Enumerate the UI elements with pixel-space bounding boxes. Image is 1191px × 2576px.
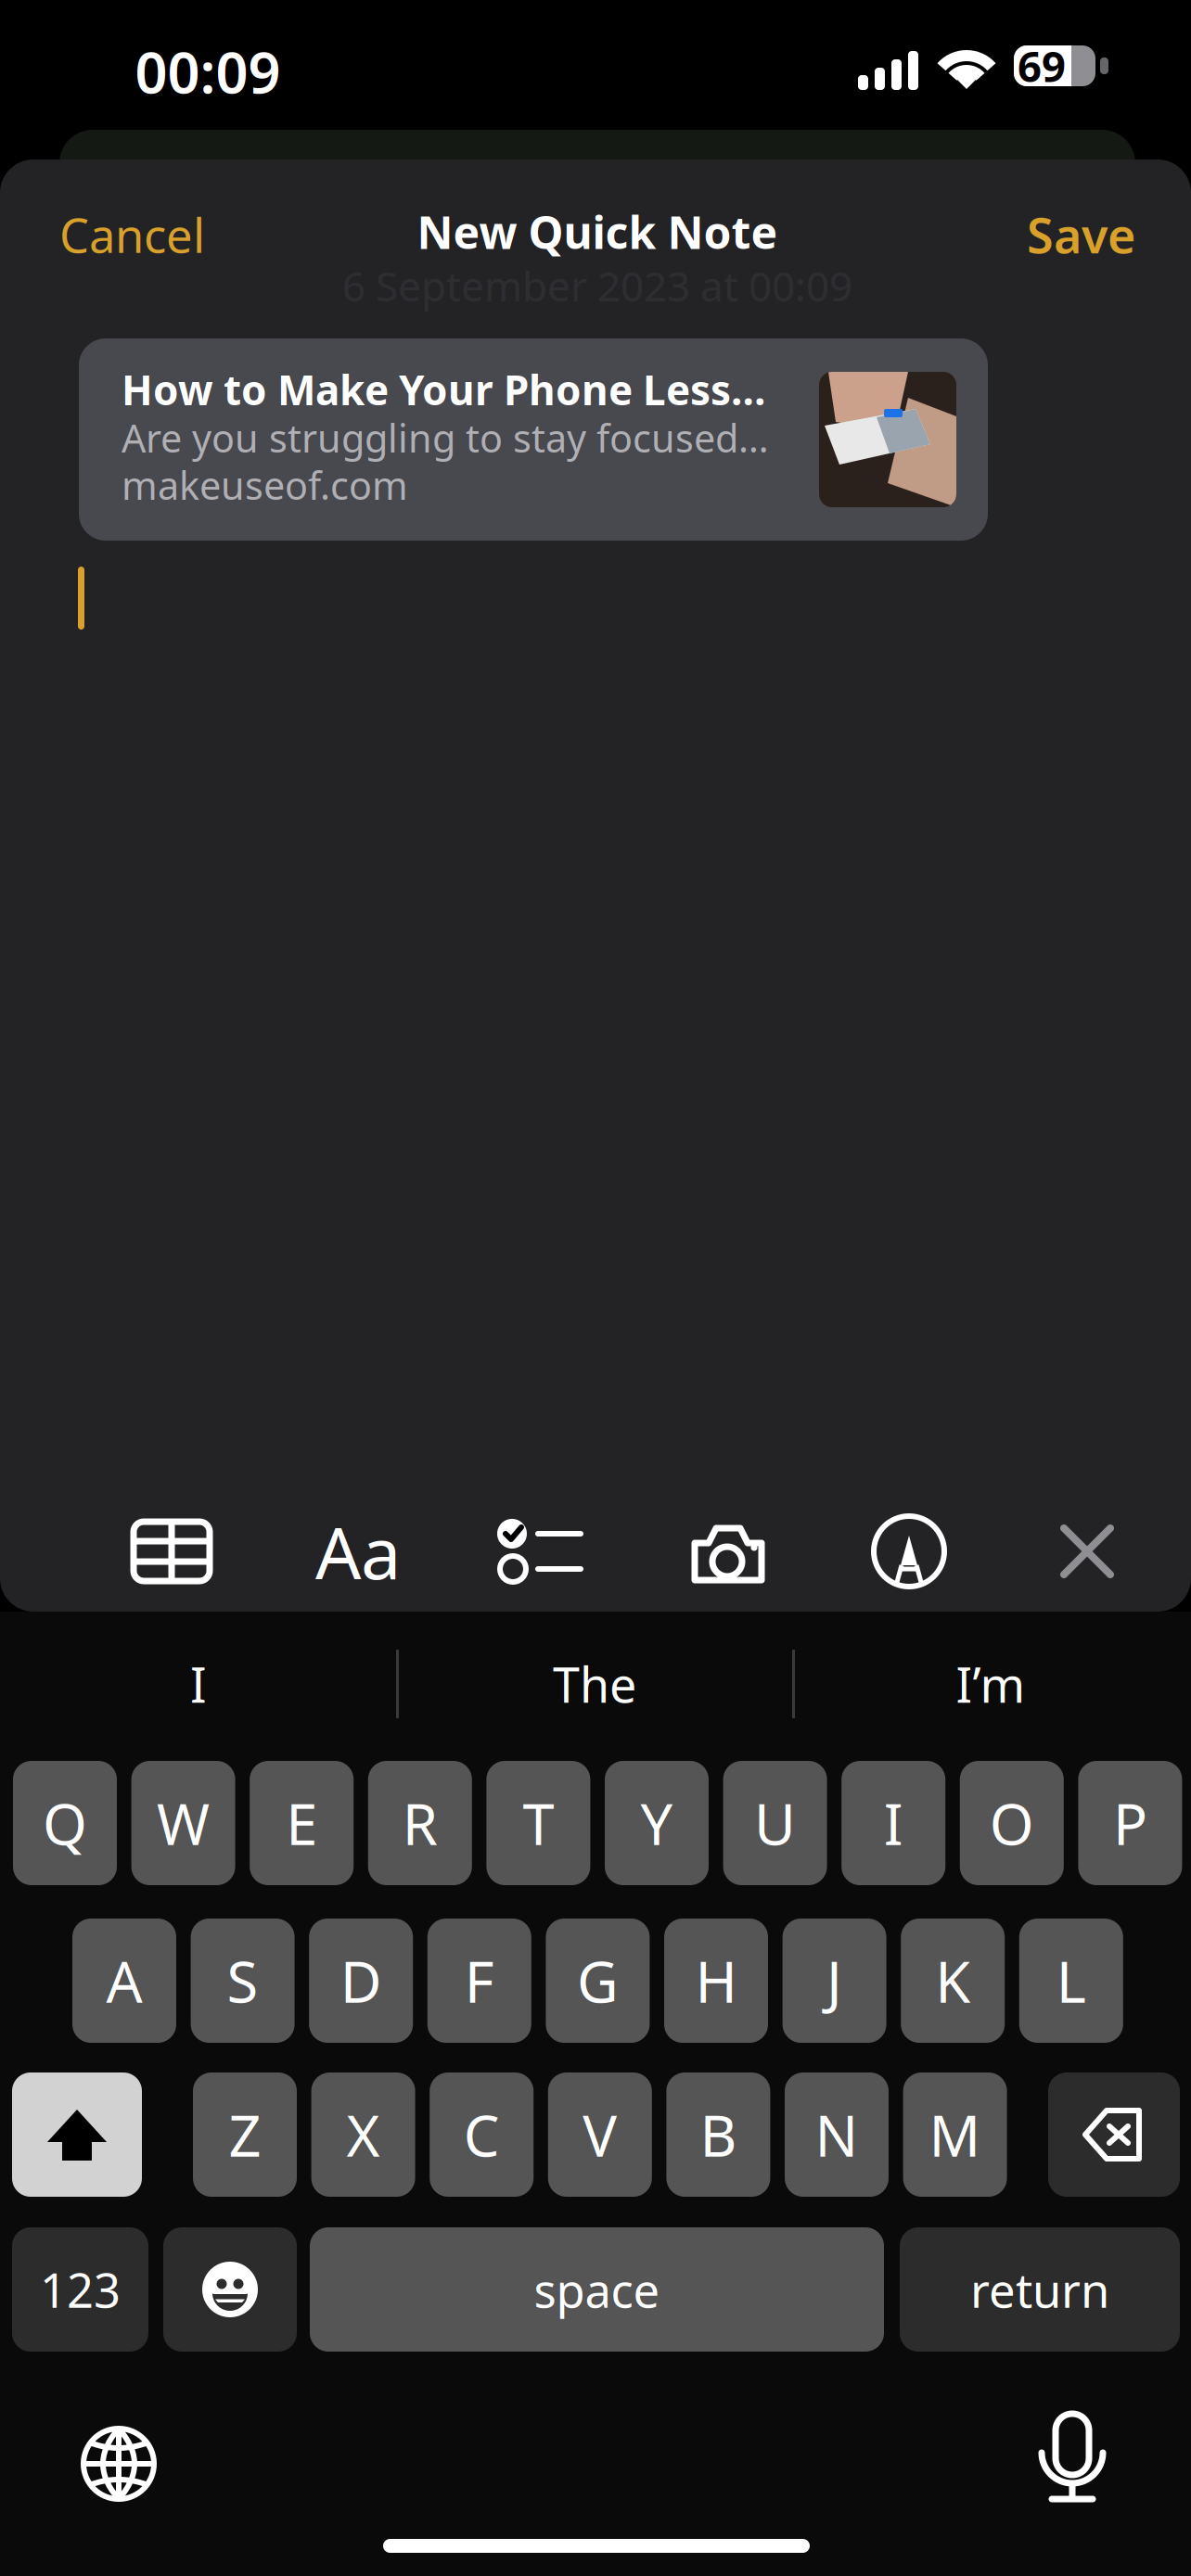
staticText: A [106,1942,142,2019]
staticText: space [534,2257,660,2321]
button[interactable] [163,2227,297,2352]
button[interactable]: H [664,1919,768,2043]
button[interactable]: X [311,2072,415,2197]
staticText: X [347,2096,380,2173]
staticText: K [935,1942,970,2019]
button[interactable]: A [72,1919,176,2043]
staticText: W [157,1784,210,1862]
button[interactable]: space [310,2227,884,2352]
button[interactable]: I’m [796,1633,1185,1735]
button[interactable]: C [430,2072,534,2197]
button[interactable]: L [1019,1919,1123,2043]
staticText: G [577,1942,619,2019]
staticText: V [583,2096,617,2173]
button[interactable]: Dictation [1021,2408,1123,2510]
staticText: Z [229,2096,261,2173]
button[interactable]: T [486,1761,590,1885]
button[interactable]: J [782,1919,886,2043]
staticText: M [929,2096,981,2173]
staticText: return [970,2257,1109,2321]
button[interactable]: M [903,2072,1007,2197]
staticText: Q [43,1784,87,1862]
button[interactable]: R [368,1761,472,1885]
button[interactable]: return [900,2227,1180,2352]
staticText: 69 [1018,37,1066,94]
button[interactable]: Camera [677,1510,779,1593]
staticText: E [286,1784,317,1862]
staticText: How to Make Your Phone Less Di… [122,362,771,417]
staticText: B [700,2096,737,2173]
button[interactable]: Close [1036,1504,1138,1599]
staticText: U [754,1784,796,1862]
button[interactable]: Markup [858,1510,960,1593]
staticText: Are you struggling to stay focused on w… [122,412,771,464]
button[interactable]: Aa [302,1510,414,1593]
button[interactable]: I [4,1633,393,1735]
button[interactable]: Cancel [59,200,223,269]
button[interactable] [1048,2072,1180,2197]
button[interactable]: G [546,1919,650,2043]
button[interactable]: D [309,1919,413,2043]
button[interactable]: V [548,2072,652,2197]
staticText: 00:09 [135,33,281,110]
button[interactable] [12,2072,142,2197]
button[interactable]: Table [121,1510,223,1593]
staticText: Aa [315,1502,401,1600]
button[interactable]: I [841,1761,945,1885]
staticText: Cancel [59,203,205,267]
staticText: makeuseof.com [122,459,408,511]
staticText: C [464,2096,500,2173]
button[interactable]: Z [193,2072,297,2197]
button[interactable]: E [250,1761,354,1885]
button[interactable]: The [400,1633,789,1735]
staticText: New Quick Note [417,201,778,262]
staticText: O [990,1784,1034,1862]
button[interactable]: Q [13,1761,117,1885]
staticText: D [340,1942,382,2019]
staticText: R [402,1784,438,1862]
button[interactable]: How to Make Your Phone Less Di… [79,338,988,541]
button[interactable]: F [427,1919,531,2043]
staticText: 6 September 2023 at 00:09 [342,258,852,313]
button[interactable]: 123 [12,2227,148,2352]
staticText: Save [1027,202,1135,267]
staticText: Y [640,1784,673,1862]
button[interactable]: B [666,2072,770,2197]
staticText: F [465,1942,494,2019]
staticText: J [827,1942,842,2019]
staticText: T [523,1784,554,1862]
button[interactable]: Save [1005,200,1135,269]
staticText: H [695,1942,737,2019]
button[interactable]: N [785,2072,889,2197]
staticText: P [1113,1784,1147,1862]
button[interactable]: O [960,1761,1064,1885]
staticText: I’m [956,1651,1025,1717]
staticText: S [227,1942,258,2019]
button[interactable]: K [901,1919,1005,2043]
staticText: I [884,1784,903,1862]
button[interactable]: Switch keyboard [68,2413,170,2515]
button[interactable]: P [1078,1761,1182,1885]
button[interactable]: Y [605,1761,709,1885]
staticText: 123 [40,2257,121,2321]
staticText: L [1056,1942,1086,2019]
staticText: The [553,1651,636,1717]
button[interactable]: S [191,1919,295,2043]
button[interactable]: W [131,1761,235,1885]
button[interactable]: U [723,1761,827,1885]
staticText: N [815,2096,858,2173]
button[interactable]: Checklist [492,1510,594,1593]
staticText: I [190,1651,207,1717]
